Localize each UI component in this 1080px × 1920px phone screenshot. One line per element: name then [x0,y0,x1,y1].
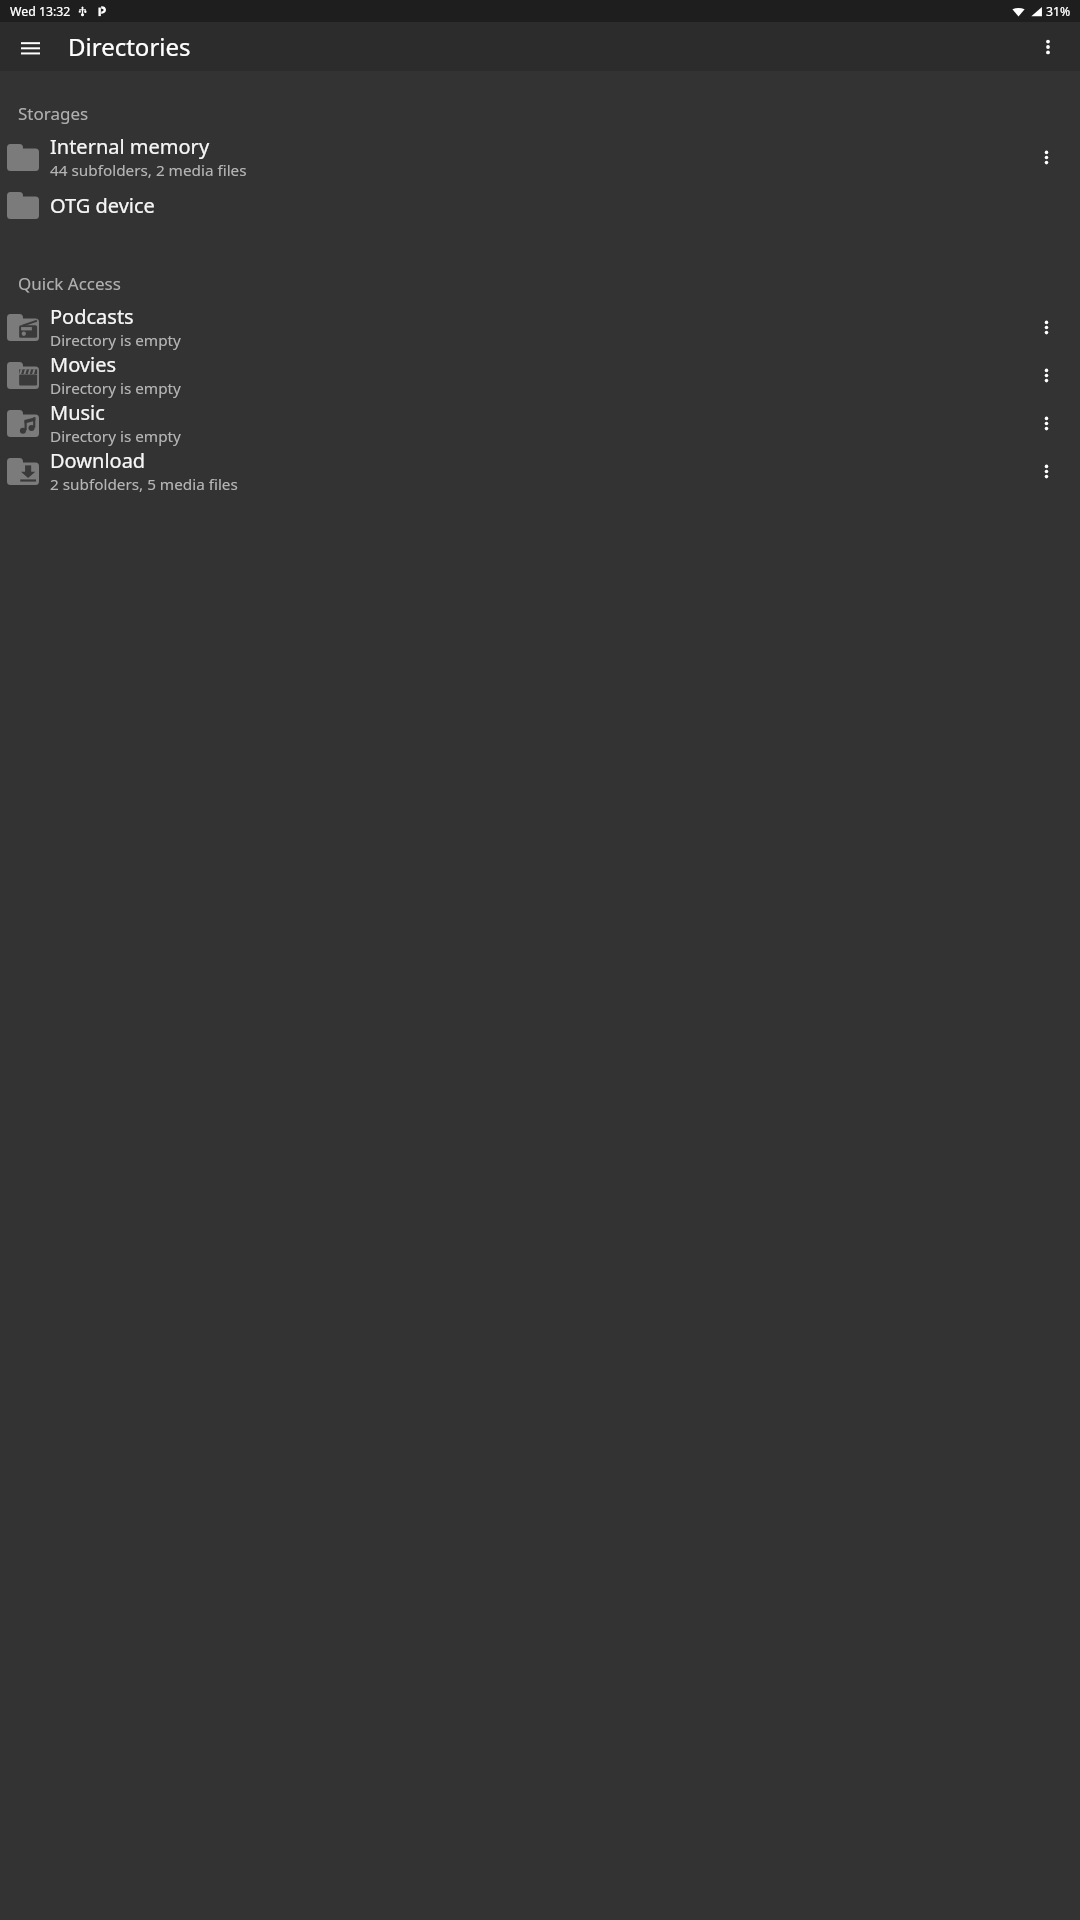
staticText: Directory is empty [50,330,181,351]
staticText: Quick Access [18,272,121,295]
staticText: Podcasts [50,303,134,330]
staticText: Movies [50,351,117,378]
button[interactable]: Item options for Download [1029,454,1063,488]
staticText: Directory is empty [50,426,181,447]
button[interactable]: Podcasts [0,303,1080,351]
staticText: Directory is empty [50,378,181,399]
button[interactable]: Item options for Internal memory [1029,140,1063,174]
staticText: Storages [18,102,89,125]
staticText: 31% [1046,3,1071,20]
button[interactable]: More options [1032,31,1064,63]
button[interactable]: Music [0,399,1080,447]
button[interactable]: Download [0,447,1080,495]
staticText: Wed 13:32 [10,3,71,20]
button[interactable]: Item options for Movies [1029,358,1063,392]
staticText: OTG device [50,192,155,219]
staticText: Directories [68,30,191,63]
button[interactable]: Item options for Podcasts [1029,310,1063,344]
button[interactable]: Movies [0,351,1080,399]
staticText: Internal memory [50,133,210,160]
staticText: Music [50,399,105,426]
button[interactable]: Item options for Music [1029,406,1063,440]
button[interactable]: Open navigation drawer [14,31,46,63]
staticText: 44 subfolders, 2 media files [50,160,247,181]
staticText: 2 subfolders, 5 media files [50,474,238,495]
button[interactable]: Internal memory [0,133,1080,181]
button[interactable]: OTG device [0,181,1080,229]
staticText: Download [50,447,146,474]
